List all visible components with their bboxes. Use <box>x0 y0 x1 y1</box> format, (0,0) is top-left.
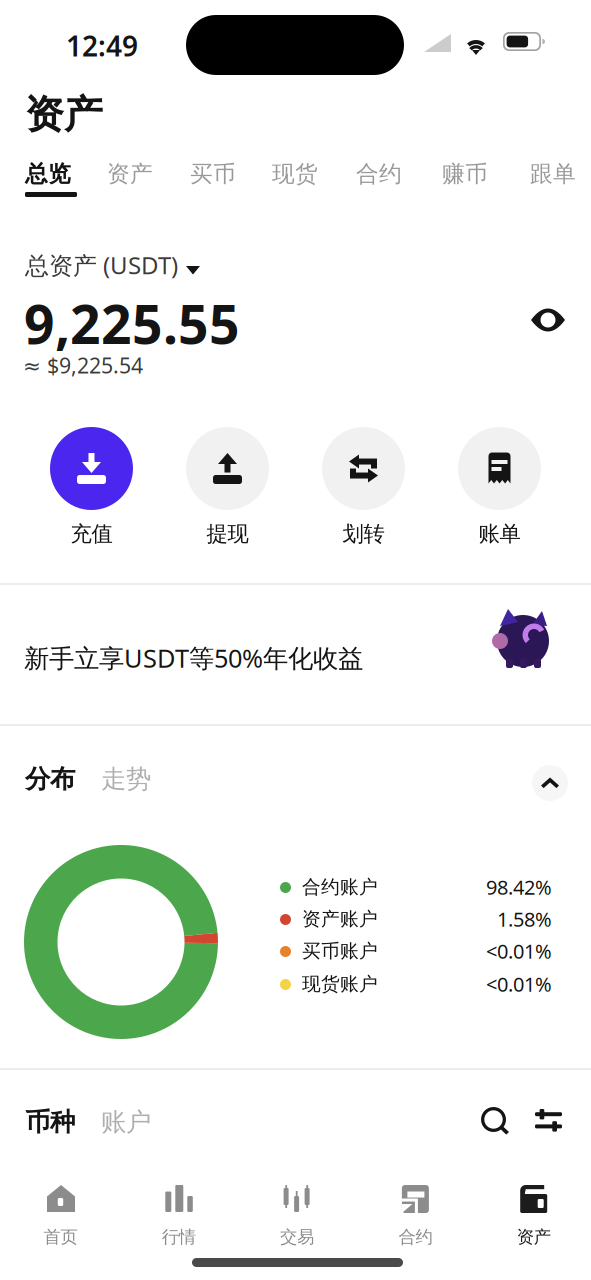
staticText: 现货账户 <box>302 972 378 995</box>
staticText: 总览 <box>25 160 71 188</box>
staticText: 9,225.55 <box>24 288 240 359</box>
button[interactable]: Hide balance <box>528 304 568 336</box>
button[interactable]: 充值 <box>37 427 146 547</box>
button[interactable]: 首页 <box>1 1185 119 1259</box>
staticText: 行情 <box>162 1226 196 1248</box>
staticText: 98.42% <box>486 874 552 900</box>
button[interactable]: 新手立享USDT等50%年化收益 <box>0 585 591 724</box>
staticText: 赚币 <box>442 160 488 188</box>
staticText: 币种 <box>25 1106 75 1137</box>
staticText: 充值 <box>70 521 112 547</box>
button[interactable]: 行情 <box>120 1185 238 1259</box>
button[interactable]: 币种 <box>25 1103 81 1141</box>
button[interactable]: 提现 <box>173 427 282 547</box>
button[interactable]: 交易 <box>238 1185 356 1259</box>
button[interactable]: 赚币 <box>442 159 496 203</box>
staticText: 账户 <box>101 1106 151 1137</box>
staticText: 合约 <box>356 160 402 188</box>
staticText: 交易 <box>280 1226 314 1248</box>
staticText: 账单 <box>478 521 520 547</box>
staticText: 现货 <box>272 160 318 188</box>
staticText: 买币账户 <box>302 939 378 962</box>
button[interactable]: 合约 <box>356 159 410 203</box>
staticText: 首页 <box>43 1226 77 1248</box>
staticText: 资产 <box>107 160 153 188</box>
button[interactable]: 账户 <box>101 1103 157 1141</box>
staticText: 跟单 <box>530 160 576 188</box>
staticText: 合约账户 <box>302 875 378 898</box>
staticText: 总资产 (USDT) <box>25 249 178 281</box>
button[interactable]: 总览 <box>25 159 79 203</box>
button[interactable]: Collapse <box>532 765 568 801</box>
staticText: 新手立享USDT等50%年化收益 <box>24 641 363 675</box>
button[interactable]: Search <box>481 1107 509 1134</box>
button[interactable]: 买币 <box>190 159 244 203</box>
staticText: 资产 <box>517 1226 551 1248</box>
button[interactable]: 账单 <box>445 427 554 547</box>
button[interactable]: 合约 <box>356 1185 474 1259</box>
button[interactable]: Filter <box>535 1109 562 1132</box>
staticText: 资产账户 <box>302 907 378 930</box>
button[interactable]: 资产 <box>475 1185 591 1259</box>
staticText: 提现 <box>206 521 248 547</box>
button[interactable]: 分布 <box>25 760 81 798</box>
button[interactable]: 总资产 (USDT) <box>25 250 215 280</box>
staticText: <0.01% <box>486 971 552 997</box>
button[interactable]: 划转 <box>309 427 418 547</box>
staticText: 分布 <box>25 763 75 794</box>
button[interactable]: 现货 <box>272 159 326 203</box>
staticText: 合约 <box>398 1226 432 1248</box>
staticText: ≈ $9,225.54 <box>23 351 143 379</box>
button[interactable]: 跟单 <box>530 159 584 203</box>
staticText: 买币 <box>190 160 236 188</box>
staticText: 划转 <box>342 521 384 547</box>
staticText: 12:49 <box>66 27 138 64</box>
staticText: 资产 <box>25 91 103 138</box>
button[interactable]: 资产 <box>107 159 161 203</box>
staticText: <0.01% <box>486 938 552 964</box>
staticText: 走势 <box>101 763 151 794</box>
staticText: 1.58% <box>497 906 552 932</box>
button[interactable]: 走势 <box>101 760 157 798</box>
